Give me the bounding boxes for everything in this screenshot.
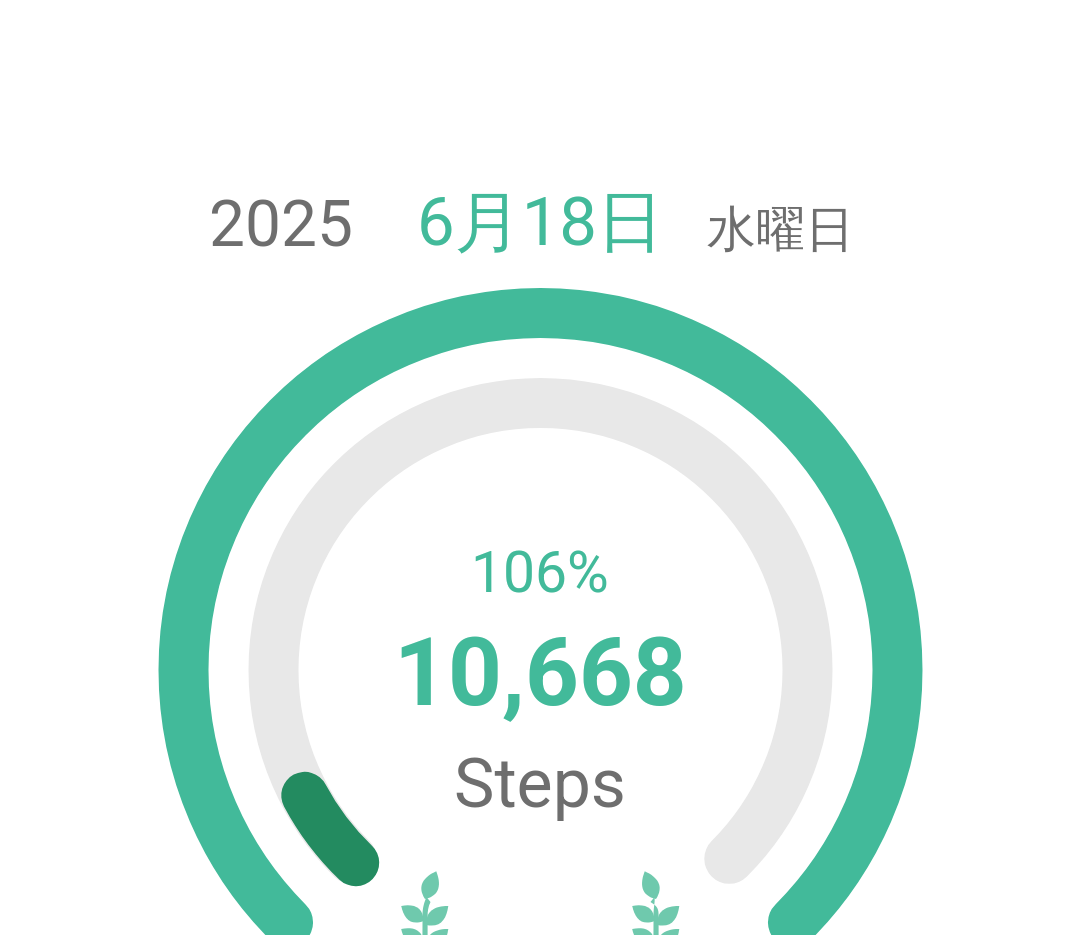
staticText: 水曜日 xyxy=(707,199,854,261)
staticText: Steps xyxy=(454,744,626,824)
staticText: 6月18日 xyxy=(417,180,664,264)
button[interactable]: 106% xyxy=(330,530,750,830)
staticText: 10,668 xyxy=(394,618,687,728)
staticText: 106% xyxy=(471,539,609,606)
staticText: 2025 xyxy=(209,187,353,262)
button[interactable]: Daily step progress ring, 106 percent xyxy=(157,286,924,935)
button[interactable]: 2025 xyxy=(180,160,880,275)
